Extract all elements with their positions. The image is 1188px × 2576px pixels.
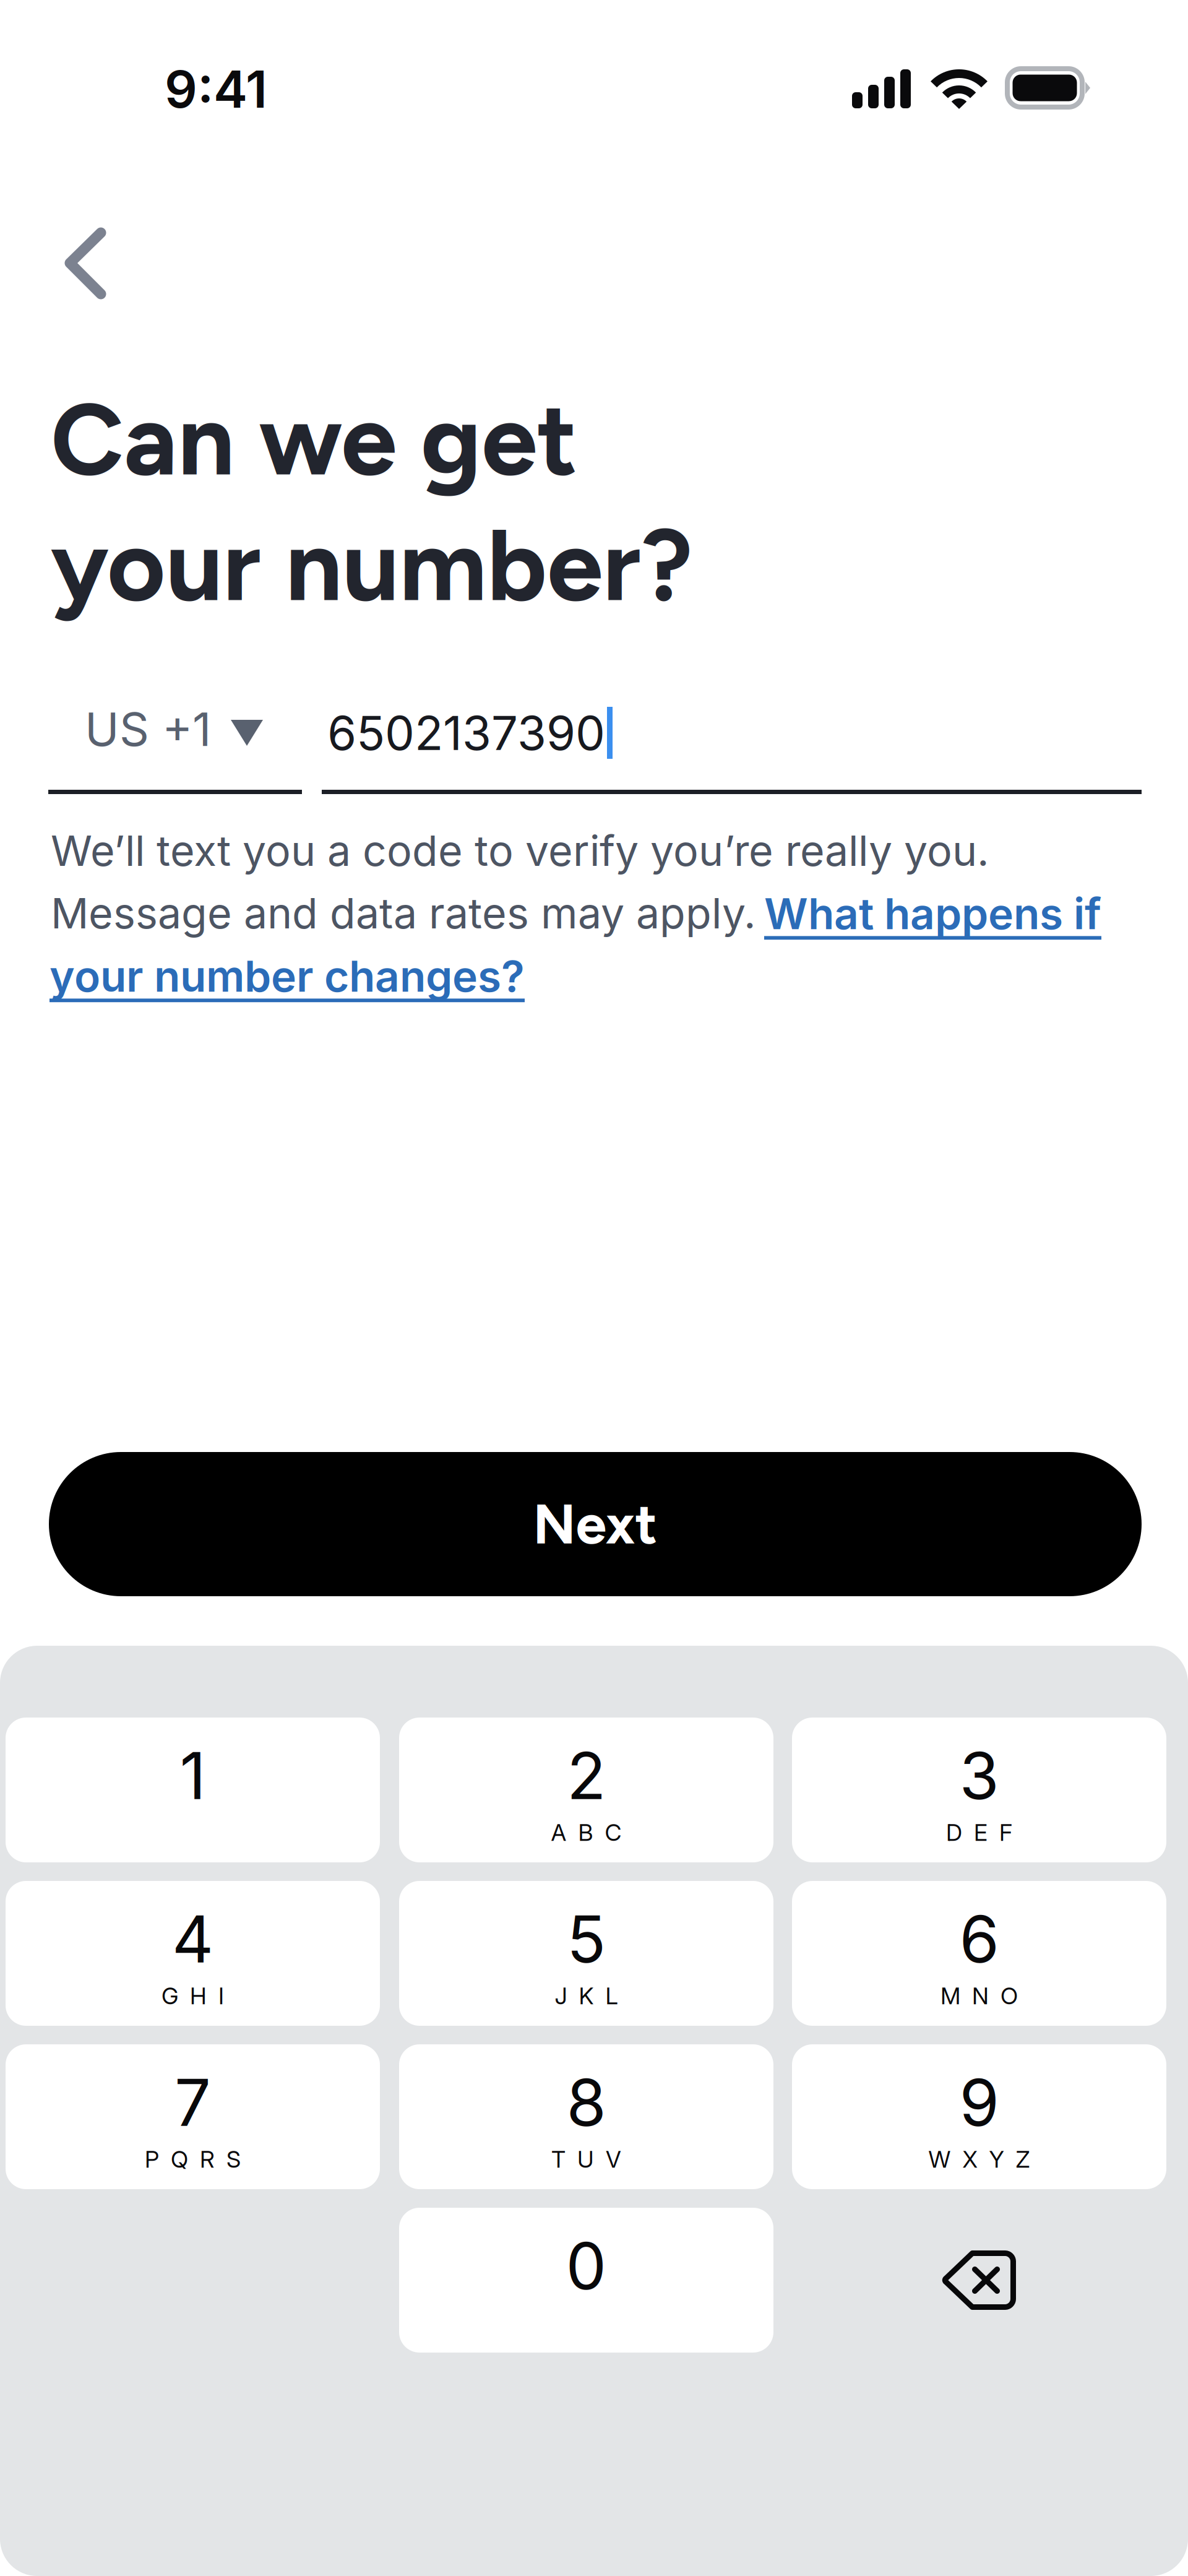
staticText: ABC	[551, 1818, 622, 1846]
staticText: 6	[959, 1900, 999, 1978]
staticText: Message and data rates may apply.	[51, 888, 756, 938]
staticText: your number changes?	[49, 950, 525, 1002]
button[interactable]: 1	[6, 1718, 380, 1862]
button[interactable]: 6	[792, 1881, 1166, 2026]
staticText: US +1	[85, 701, 211, 757]
button[interactable]: 0	[399, 2208, 773, 2353]
button[interactable]: 5	[399, 1881, 773, 2026]
staticText: What happens if	[764, 888, 1101, 939]
button[interactable]: 4	[6, 1881, 380, 2026]
button[interactable]: What happens if	[764, 888, 1101, 939]
staticText: 9	[959, 2064, 999, 2141]
staticText: MNO	[940, 1982, 1018, 2010]
staticText: We’ll text you a code to verify you’re r…	[51, 825, 989, 876]
staticText: JKL	[555, 1982, 618, 2010]
staticText: 3	[959, 1737, 999, 1815]
button[interactable]: your number changes?	[49, 950, 525, 1002]
staticText: 4	[172, 1900, 213, 1978]
staticText: 2	[567, 1737, 606, 1815]
button[interactable]: Delete	[792, 2208, 1166, 2353]
button[interactable]: Next	[49, 1452, 1142, 1596]
staticText: 1	[180, 1737, 206, 1815]
button[interactable]: 2	[399, 1718, 773, 1862]
button[interactable]: 3	[792, 1718, 1166, 1862]
staticText: Can we get	[51, 379, 577, 500]
button[interactable]: Back	[34, 197, 137, 330]
staticText: Next	[533, 1491, 657, 1557]
staticText: DEF	[946, 1818, 1012, 1846]
staticText: 7	[174, 2064, 211, 2141]
staticText: 6502137390	[327, 704, 605, 761]
staticText: 0	[566, 2227, 607, 2305]
staticText: 8	[566, 2064, 606, 2141]
staticText: WXYZ	[928, 2145, 1030, 2173]
button[interactable]: 9	[792, 2044, 1166, 2189]
staticText: GHI	[161, 1982, 224, 2010]
staticText: 5	[567, 1900, 606, 1978]
staticText: PQRS	[145, 2145, 241, 2173]
staticText: 9:41	[165, 58, 267, 120]
button[interactable]: 8	[399, 2044, 773, 2189]
button[interactable]: 7	[6, 2044, 380, 2189]
staticText: TUV	[551, 2145, 621, 2173]
button[interactable]: US +1	[48, 699, 302, 793]
staticText: your number?	[51, 504, 692, 625]
